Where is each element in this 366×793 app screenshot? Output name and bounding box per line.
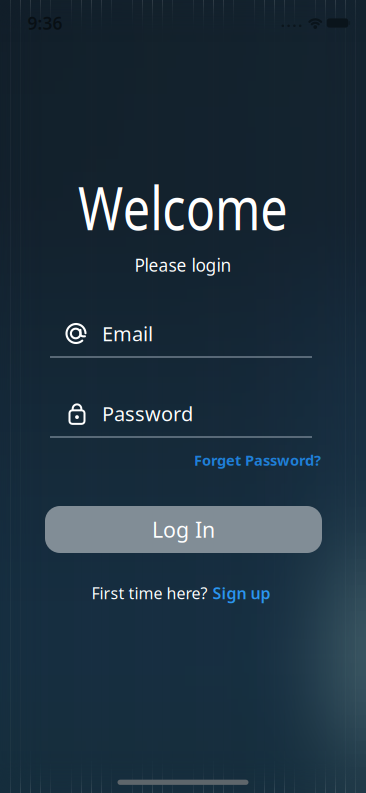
button[interactable]: Sign up: [212, 582, 270, 604]
button[interactable]: Password: [50, 391, 312, 435]
staticText: Please login: [134, 253, 231, 276]
button[interactable]: Email: [50, 311, 312, 355]
staticText: Forget Password?: [194, 450, 321, 470]
button[interactable]: Log In: [45, 506, 322, 553]
staticText: Welcome: [53, 167, 312, 247]
staticText: Sign up: [212, 582, 270, 604]
staticText: First time here?: [91, 582, 207, 604]
staticText: 9:36: [27, 11, 62, 34]
staticText: Email: [102, 320, 153, 347]
button[interactable]: Forget Password?: [71, 450, 321, 470]
staticText: Password: [102, 400, 193, 427]
staticText: Log In: [152, 515, 215, 544]
